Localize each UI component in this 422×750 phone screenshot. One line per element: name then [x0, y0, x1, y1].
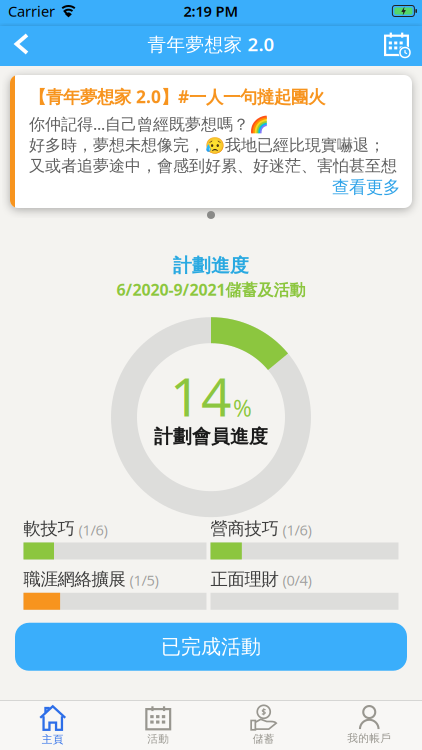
staticText: 職涯網絡擴展 — [23, 568, 125, 590]
staticText: 儲蓄 — [253, 732, 275, 745]
staticText: (1/5) — [129, 570, 158, 590]
staticText: 【青年夢想家 2.0】#一人一句撻起團火 — [29, 85, 325, 108]
button[interactable]: 我的帳戶 — [316, 701, 422, 749]
staticText: 好多時，夢想未想像完，😥我地已經比現實嚇退； — [29, 135, 385, 155]
staticText: 你仲記得...自己曾經既夢想嗎？🌈 — [29, 113, 269, 134]
staticText: (1/6) — [78, 520, 107, 539]
button[interactable]: 儲蓄 — [211, 701, 316, 749]
button[interactable]: 活動 — [105, 701, 211, 749]
staticText: 計劃會員進度 — [154, 425, 268, 448]
staticText: 青年夢想家 2.0 — [147, 32, 274, 56]
staticText: 又或者追夢途中，會感到好累、好迷茫、害怕甚至想 — [29, 156, 397, 176]
staticText: (1/6) — [282, 520, 311, 539]
button[interactable]: 查看更多 — [332, 177, 400, 198]
staticText: Carrier — [8, 1, 55, 21]
button[interactable]: 主頁 — [0, 701, 105, 749]
staticText: 主頁 — [42, 733, 64, 746]
staticText: 營商技巧 — [210, 518, 278, 539]
staticText: 查看更多 — [332, 177, 400, 198]
staticText: 活動 — [147, 732, 169, 745]
staticText: 14 — [170, 360, 232, 431]
button[interactable]: Activity history — [384, 25, 422, 66]
staticText: 我的帳戶 — [347, 731, 391, 745]
staticText: % — [233, 393, 252, 423]
staticText: 已完成活動 — [161, 634, 261, 659]
staticText: 2:19 PM — [183, 1, 238, 21]
staticText: 正面理財 — [210, 568, 278, 590]
staticText: 6/2020-9/2021儲蓄及活動 — [116, 279, 305, 300]
staticText: (0/4) — [282, 570, 311, 590]
staticText: 軟技巧 — [23, 518, 74, 539]
staticText: 計劃進度 — [173, 254, 249, 277]
button[interactable]: 已完成活動 — [15, 623, 407, 671]
button[interactable]: Back — [0, 26, 31, 66]
